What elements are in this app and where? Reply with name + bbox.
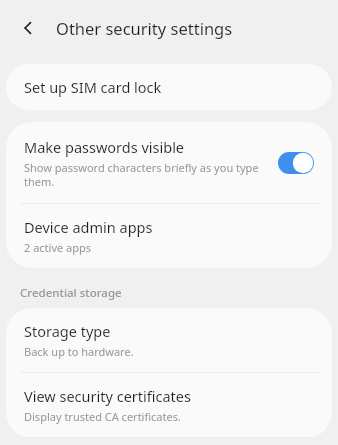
staticText: Device admin apps	[24, 217, 153, 237]
staticText: 2 active apps	[24, 240, 92, 255]
button[interactable]: Make passwords visible toggle	[274, 148, 318, 178]
button[interactable]: Set up SIM card lock	[6, 64, 332, 110]
button[interactable]: Make passwords visible	[6, 122, 332, 203]
button[interactable]: Device admin apps	[6, 204, 332, 268]
staticText: Make passwords visible	[24, 137, 185, 157]
staticText: Back up to hardware.	[24, 344, 134, 359]
staticText: Other security settings	[56, 17, 233, 39]
staticText: Credential storage	[20, 285, 122, 301]
button[interactable]: Storage type	[6, 308, 332, 372]
staticText: Set up SIM card lock	[24, 77, 162, 97]
staticText: Display trusted CA certificates.	[24, 409, 181, 424]
staticText: Show password characters briefly as you …	[24, 160, 266, 189]
staticText: Storage type	[24, 321, 111, 341]
button[interactable]: Back	[10, 10, 46, 46]
staticText: View security certificates	[24, 386, 191, 406]
button[interactable]: View security certificates	[6, 373, 332, 437]
